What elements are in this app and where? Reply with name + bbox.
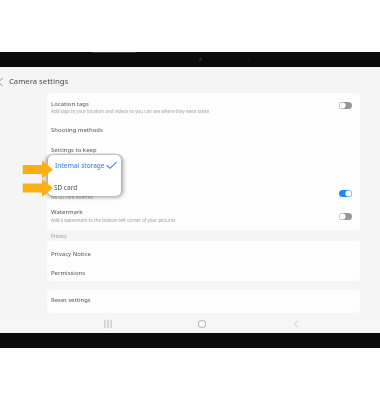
- staticText: Location tags: [51, 100, 89, 108]
- button[interactable]: SD card: [48, 175, 121, 195]
- button[interactable]: [47, 181, 360, 201]
- button[interactable]: [47, 140, 360, 160]
- staticText: Watermark: [51, 208, 83, 216]
- button[interactable]: [47, 291, 360, 311]
- button[interactable]: Back: [287, 314, 305, 333]
- button[interactable]: Home: [193, 314, 211, 333]
- staticText: No SD card inserted: [51, 194, 94, 200]
- button[interactable]: [47, 95, 360, 115]
- staticText: Permissions: [51, 269, 86, 277]
- staticText: Internal storage: [55, 161, 105, 170]
- button[interactable]: Internal storage: [48, 155, 121, 175]
- staticText: Settings to keep: [51, 146, 97, 154]
- staticText: Shutter sound: [51, 186, 92, 194]
- staticText: Privacy Notice: [51, 250, 91, 258]
- button[interactable]: [47, 160, 360, 180]
- staticText: Camera settings: [9, 76, 69, 86]
- button[interactable]: Navigate up: [0, 74, 9, 90]
- button[interactable]: [47, 263, 360, 283]
- staticText: Privacy: [51, 233, 67, 239]
- button[interactable]: Switch off: [339, 213, 352, 220]
- button[interactable]: [47, 244, 360, 264]
- button[interactable]: Switch on: [339, 190, 352, 197]
- staticText: Save to: [51, 166, 72, 174]
- staticText: Reset settings: [51, 296, 91, 304]
- button[interactable]: [47, 202, 360, 222]
- button[interactable]: Switch off: [339, 102, 352, 109]
- staticText: SD card: [54, 183, 78, 192]
- button[interactable]: Recent apps: [99, 314, 117, 333]
- staticText: Add a watermark to the bottom left corne…: [51, 217, 176, 223]
- staticText: Shooting methods: [51, 126, 103, 134]
- button[interactable]: [47, 120, 360, 140]
- staticText: Add tags to your location and videos so …: [51, 108, 210, 114]
